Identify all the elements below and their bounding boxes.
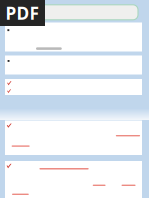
button[interactable]: PDF [0, 0, 45, 26]
staticText: PDF [5, 1, 39, 24]
